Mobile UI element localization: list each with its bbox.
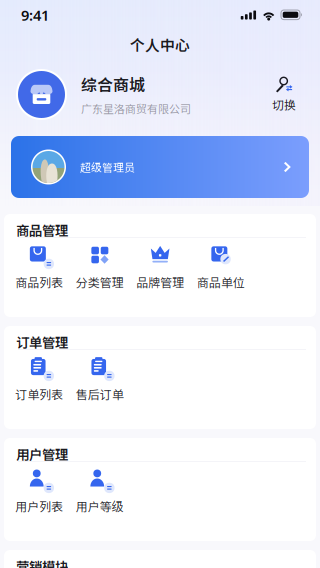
staticText: 品牌管理: [136, 273, 184, 291]
staticText: 综合商城: [81, 72, 145, 96]
staticText: 超级管理员: [80, 159, 135, 175]
staticText: 切换: [272, 96, 296, 113]
staticText: 个人中心: [130, 34, 190, 55]
staticText: 营销模块: [16, 556, 68, 568]
staticText: 用户等级: [76, 497, 124, 515]
button[interactable]: 用户列表: [9, 469, 69, 514]
button[interactable]: 用户等级: [69, 469, 130, 514]
staticText: 商品列表: [15, 273, 63, 291]
staticText: 订单管理: [16, 332, 68, 352]
staticText: 用户管理: [16, 444, 68, 464]
staticText: 售后订单: [76, 385, 124, 403]
staticText: 商品管理: [16, 220, 68, 240]
button[interactable]: 品牌管理: [130, 245, 190, 290]
staticText: 广东星洛商贸有限公司: [81, 101, 191, 116]
staticText: 9:41: [21, 5, 49, 25]
staticText: 用户列表: [15, 497, 63, 515]
button[interactable]: 商品列表: [9, 245, 69, 290]
staticText: 订单列表: [15, 385, 63, 403]
button[interactable]: 超级管理员: [0, 136, 320, 198]
button[interactable]: 切换: [262, 74, 306, 114]
button[interactable]: 分类管理: [69, 245, 130, 290]
button[interactable]: 订单列表: [9, 357, 69, 402]
button[interactable]: 商品单位: [190, 245, 251, 290]
staticText: 分类管理: [76, 273, 124, 291]
button[interactable]: 售后订单: [69, 357, 130, 402]
staticText: 商品单位: [197, 273, 245, 291]
